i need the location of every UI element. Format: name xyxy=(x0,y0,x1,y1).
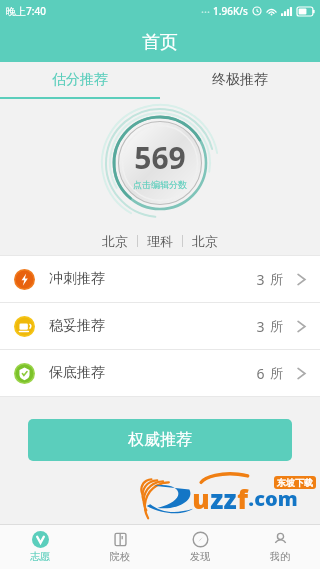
staticText: 晚上7:40 xyxy=(6,4,46,18)
staticText: 保底推荐 xyxy=(49,364,105,382)
button[interactable]: 我的 xyxy=(240,525,320,569)
button[interactable]: 稳妥推荐 xyxy=(0,303,320,349)
staticText: u xyxy=(192,481,210,516)
button[interactable]: 冲刺推荐 xyxy=(0,256,320,302)
staticText: 1.96K/s xyxy=(213,4,248,18)
staticText: 理科 xyxy=(147,233,173,249)
button[interactable]: 发现 xyxy=(160,525,240,569)
staticText: 3 xyxy=(256,270,265,289)
staticText: 终极推荐 xyxy=(212,71,268,89)
staticText: 首页 xyxy=(142,31,178,54)
staticText: 权威推荐 xyxy=(128,430,192,450)
staticText: 点击编辑分数 xyxy=(133,179,187,190)
staticText: 院校 xyxy=(110,550,130,563)
staticText: 所 xyxy=(270,318,283,334)
staticText: 冲刺推荐 xyxy=(49,270,105,288)
staticText: 所 xyxy=(270,271,283,287)
button[interactable]: 终极推荐 xyxy=(160,62,320,97)
staticText: 北京 xyxy=(102,233,128,249)
button[interactable]: 保底推荐 xyxy=(0,350,320,396)
button[interactable]: 估分推荐 xyxy=(0,62,160,97)
staticText: 所 xyxy=(270,365,283,381)
button[interactable]: 院校 xyxy=(80,525,160,569)
button[interactable]: 点击编辑分数 xyxy=(101,104,219,222)
staticText: 北京 xyxy=(192,233,218,249)
staticText: 稳妥推荐 xyxy=(49,317,105,335)
staticText: 我的 xyxy=(270,550,290,563)
button[interactable]: 北京 xyxy=(0,227,320,255)
staticText: 估分推荐 xyxy=(52,71,108,89)
staticText: 发现 xyxy=(190,550,210,563)
staticText: zz xyxy=(210,481,237,516)
staticText: 569 xyxy=(134,137,186,178)
staticText: 6 xyxy=(256,364,265,383)
button[interactable]: 权威推荐 xyxy=(28,419,292,461)
staticText: .com xyxy=(248,485,298,512)
staticText: 志愿 xyxy=(30,550,50,563)
staticText: 3 xyxy=(256,317,265,336)
button[interactable]: 志愿 xyxy=(0,525,80,569)
staticText: f xyxy=(237,481,248,516)
staticText: 东坡下载 xyxy=(277,477,313,488)
